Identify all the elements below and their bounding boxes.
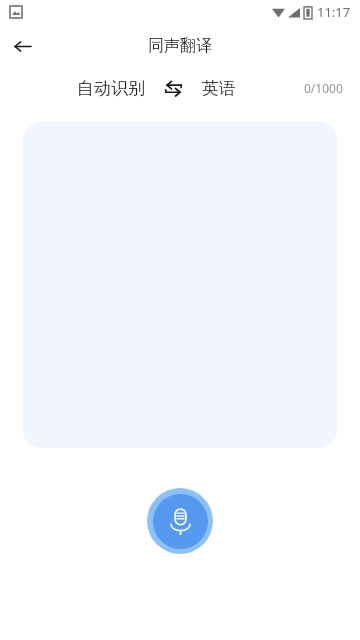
button[interactable]: 自动识别 xyxy=(77,78,145,99)
staticText: 同声翻译 xyxy=(148,36,212,56)
button[interactable]: Start recording xyxy=(147,488,213,554)
button[interactable]: Swap languages xyxy=(160,75,186,101)
button[interactable]: 英语 xyxy=(202,78,236,99)
staticText: 11:17 xyxy=(317,3,351,21)
staticText: 0/1000 xyxy=(304,80,343,96)
button[interactable]: Back xyxy=(0,24,44,68)
staticText: 自动识别 xyxy=(77,78,145,99)
staticText: 英语 xyxy=(202,78,236,99)
